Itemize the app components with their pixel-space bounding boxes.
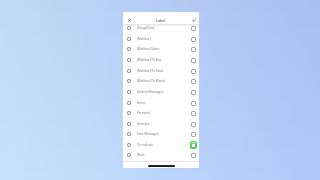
button[interactable]: Close <box>126 17 132 23</box>
button[interactable]: Done <box>191 17 197 23</box>
button[interactable]: [Mailbox]/Later <box>123 44 199 54</box>
staticText: Personal <box>137 111 150 115</box>
staticText: Work <box>137 153 145 157</box>
button[interactable]: [Mailbox]/To Buy <box>123 54 199 65</box>
button[interactable]: TurnoScale <box>123 139 199 150</box>
staticText: Receipts <box>137 122 150 126</box>
button[interactable]: [Mailbox] <box>123 33 199 44</box>
button[interactable]: Deleted Messages <box>123 86 199 97</box>
staticText: Notes <box>137 101 146 105</box>
staticText: [Imap]/Sent <box>137 26 155 30</box>
button[interactable]: Sent Messages <box>123 129 199 139</box>
button[interactable]: Personal <box>123 108 199 118</box>
staticText: [Mailbox]/To Watch <box>137 79 165 83</box>
staticText: TurnoScale <box>137 143 154 147</box>
staticText: [Mailbox]/Later <box>137 47 160 51</box>
staticText: Label <box>156 18 166 23</box>
button[interactable]: [Mailbox]/To Read <box>123 65 199 76</box>
staticText: [Mailbox] <box>137 37 151 41</box>
staticText: [Mailbox]/To Read <box>137 69 164 73</box>
button[interactable]: Work <box>123 150 199 160</box>
button[interactable]: Receipts <box>123 118 199 129</box>
button[interactable]: [Mailbox]/To Watch <box>123 76 199 86</box>
staticText: Deleted Messages <box>137 90 164 94</box>
button[interactable]: [Imap]/Sent <box>123 25 199 33</box>
button[interactable]: Notes <box>123 97 199 108</box>
staticText: [Mailbox]/To Buy <box>137 58 162 62</box>
staticText: Sent Messages <box>137 132 159 136</box>
